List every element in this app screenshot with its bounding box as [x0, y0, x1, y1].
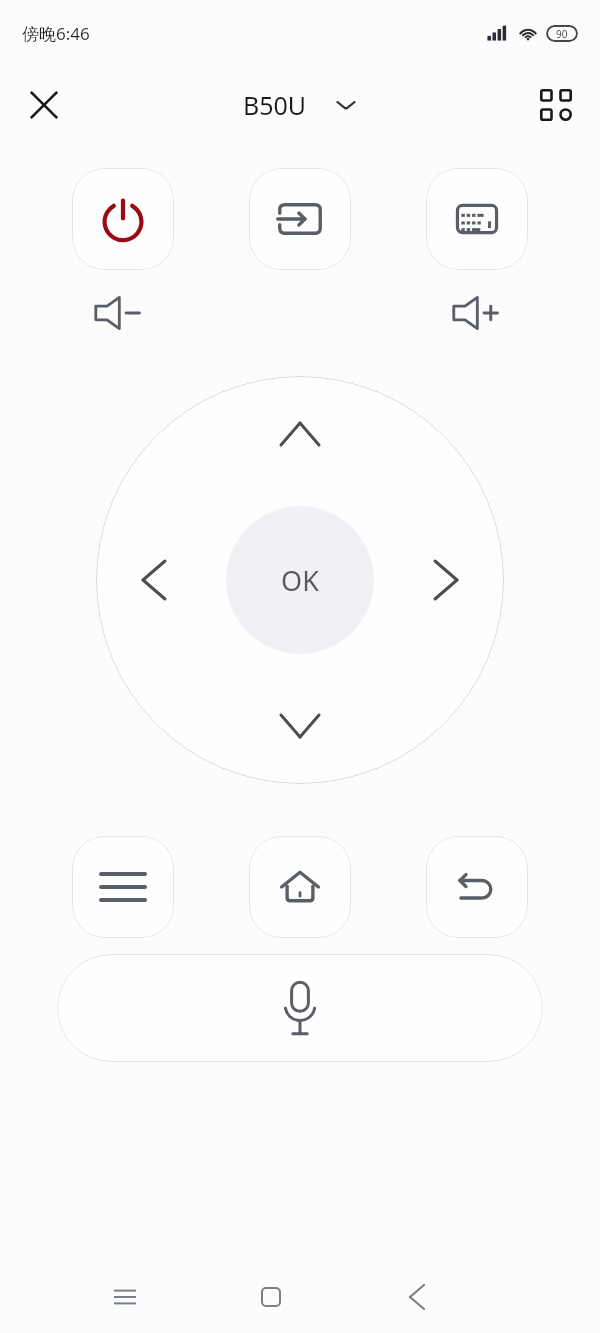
button[interactable]: B50U — [243, 88, 357, 122]
staticText: 90 — [556, 27, 568, 41]
button[interactable]: Voice search — [57, 954, 543, 1062]
button[interactable]: Volume up — [434, 282, 524, 344]
button[interactable]: Input source — [249, 168, 351, 270]
button[interactable]: Home — [235, 1269, 307, 1325]
button[interactable]: Apps — [528, 77, 584, 133]
button[interactable]: Close — [14, 75, 74, 135]
button[interactable]: Recents — [89, 1269, 161, 1325]
button[interactable]: Menu — [72, 836, 174, 938]
button[interactable]: Right — [408, 532, 484, 628]
button[interactable]: Back — [381, 1269, 453, 1325]
staticText: 傍晚6:46 — [22, 22, 90, 45]
button[interactable]: Left — [116, 532, 192, 628]
button[interactable]: OK — [226, 506, 374, 654]
button[interactable]: Home — [249, 836, 351, 938]
button[interactable]: Up — [252, 396, 348, 472]
button[interactable]: Down — [252, 688, 348, 764]
button[interactable]: Power — [72, 168, 174, 270]
button[interactable]: Keyboard — [426, 168, 528, 270]
button[interactable]: Back — [426, 836, 528, 938]
button[interactable]: Volume down — [76, 282, 166, 344]
staticText: B50U — [243, 88, 307, 122]
staticText: OK — [281, 562, 319, 599]
